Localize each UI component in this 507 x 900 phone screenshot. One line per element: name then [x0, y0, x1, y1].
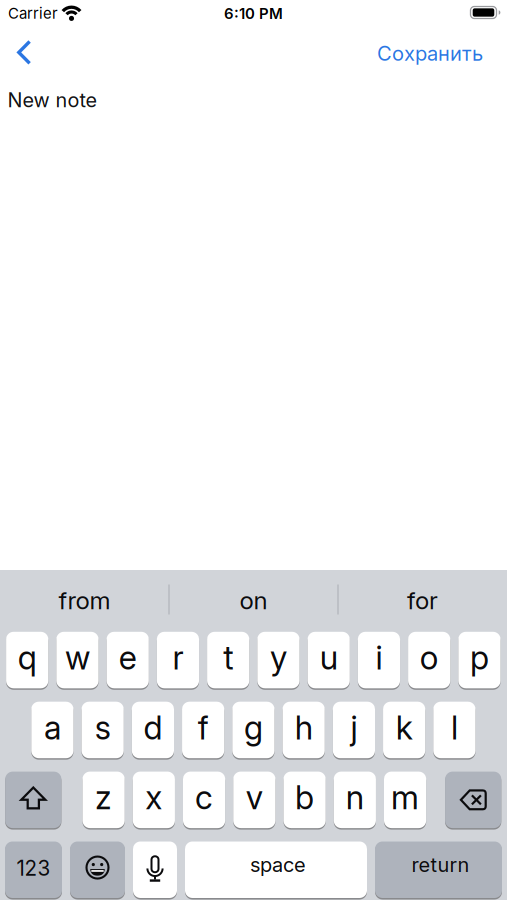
staticText: return: [411, 853, 469, 877]
staticText: k: [396, 708, 413, 747]
button[interactable]: o: [408, 632, 450, 688]
button[interactable]: c: [183, 772, 225, 828]
staticText: for: [407, 586, 438, 615]
staticText: r: [172, 638, 183, 677]
staticText: h: [295, 708, 313, 747]
button[interactable]: w: [56, 632, 99, 688]
button[interactable]: g: [232, 702, 274, 758]
staticText: t: [223, 638, 233, 677]
staticText: f: [198, 708, 209, 747]
button[interactable]: s: [81, 702, 124, 758]
staticText: from: [58, 586, 110, 615]
button[interactable]: return: [375, 841, 502, 898]
staticText: x: [145, 778, 162, 817]
button[interactable]: Emoji: [70, 841, 125, 898]
staticText: l: [451, 708, 458, 747]
staticText: z: [95, 778, 112, 817]
button[interactable]: h: [283, 702, 325, 758]
button[interactable]: Shift: [5, 772, 61, 828]
staticText: i: [375, 638, 382, 677]
button[interactable]: space: [185, 841, 367, 898]
button[interactable]: y: [257, 632, 300, 688]
staticText: New note: [7, 88, 97, 112]
staticText: c: [195, 778, 213, 817]
button[interactable]: m: [384, 772, 426, 828]
staticText: e: [119, 638, 137, 677]
button[interactable]: j: [333, 702, 375, 758]
button[interactable]: d: [132, 702, 174, 758]
button[interactable]: Сохранить: [377, 41, 483, 66]
button[interactable]: u: [308, 632, 350, 688]
button[interactable]: from: [0, 571, 169, 630]
staticText: s: [95, 708, 111, 747]
button[interactable]: k: [383, 702, 425, 758]
staticText: u: [320, 638, 338, 677]
button[interactable]: z: [82, 772, 125, 828]
button[interactable]: on: [169, 571, 338, 630]
staticText: d: [143, 708, 162, 747]
staticText: a: [44, 708, 61, 747]
button[interactable]: n: [334, 772, 376, 828]
button[interactable]: l: [433, 702, 475, 758]
staticText: m: [391, 778, 419, 817]
button[interactable]: t: [207, 632, 249, 688]
button[interactable]: x: [133, 772, 175, 828]
staticText: w: [65, 638, 90, 677]
button[interactable]: Numbers: [5, 841, 62, 898]
button[interactable]: p: [458, 632, 501, 688]
staticText: space: [250, 853, 306, 877]
staticText: 6:10 PM: [224, 4, 283, 23]
button[interactable]: i: [358, 632, 400, 688]
button[interactable]: Delete: [445, 772, 501, 828]
staticText: b: [295, 778, 314, 817]
button[interactable]: Back: [9, 34, 39, 70]
button[interactable]: a: [31, 702, 73, 758]
button[interactable]: e: [107, 632, 149, 688]
staticText: q: [18, 638, 37, 677]
staticText: Сохранить: [377, 41, 483, 66]
staticText: on: [239, 586, 267, 615]
staticText: y: [270, 638, 287, 677]
button[interactable]: v: [233, 772, 275, 828]
staticText: v: [246, 778, 263, 817]
staticText: n: [346, 778, 364, 817]
staticText: p: [470, 638, 489, 677]
staticText: g: [244, 708, 263, 747]
button[interactable]: r: [157, 632, 199, 688]
staticText: j: [350, 708, 357, 747]
button[interactable]: b: [283, 772, 326, 828]
staticText: Carrier: [8, 4, 58, 22]
button[interactable]: Dictate: [133, 841, 177, 898]
button[interactable]: f: [182, 702, 224, 758]
button[interactable]: q: [6, 632, 48, 688]
button[interactable]: for: [338, 571, 507, 630]
staticText: 123: [16, 856, 50, 881]
staticText: o: [420, 638, 439, 677]
